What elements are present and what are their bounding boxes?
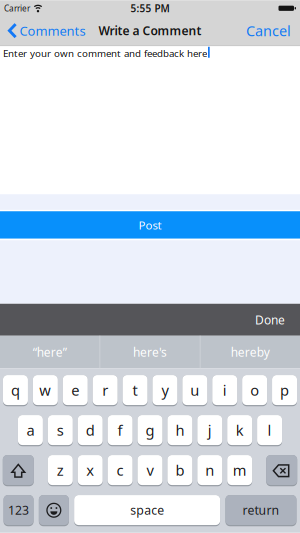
staticText: b — [175, 460, 184, 480]
button[interactable]: p — [272, 375, 297, 406]
staticText: k — [236, 420, 244, 440]
staticText: c — [117, 460, 124, 480]
button[interactable]: s — [48, 415, 73, 446]
staticText: s — [57, 420, 64, 440]
staticText: Comments — [19, 22, 85, 39]
staticText: p — [280, 380, 289, 400]
staticText: t — [132, 380, 137, 400]
staticText: Cancel — [246, 21, 291, 40]
button[interactable]: m — [227, 455, 252, 486]
staticText: l — [268, 420, 272, 440]
button[interactable]: Delete — [266, 455, 297, 486]
staticText: z — [57, 460, 64, 480]
button[interactable]: return — [225, 495, 296, 526]
button[interactable]: Shift — [3, 455, 34, 486]
button[interactable]: j — [197, 415, 222, 446]
button[interactable]: t — [122, 375, 147, 406]
button[interactable]: r — [93, 375, 118, 406]
button[interactable]: v — [137, 455, 162, 486]
button[interactable]: a — [18, 415, 43, 446]
staticText: g — [145, 420, 154, 440]
staticText: d — [86, 420, 95, 440]
button[interactable]: g — [137, 415, 162, 446]
staticText: v — [146, 460, 153, 480]
staticText: n — [205, 460, 214, 480]
button[interactable]: Post — [0, 211, 300, 239]
button[interactable]: b — [167, 455, 192, 486]
button[interactable]: x — [78, 455, 103, 486]
button[interactable]: e — [63, 375, 88, 406]
button[interactable]: Cancel — [246, 21, 300, 40]
button[interactable]: u — [182, 375, 207, 406]
button[interactable]: n — [197, 455, 222, 486]
button[interactable]: hereby — [201, 336, 300, 368]
button[interactable]: h — [167, 415, 192, 446]
staticText: Post — [138, 217, 161, 233]
staticText: u — [190, 380, 199, 400]
button[interactable]: c — [108, 455, 133, 486]
staticText: space — [130, 502, 164, 518]
button[interactable]: space — [74, 495, 220, 526]
button[interactable]: “here” — [0, 336, 99, 368]
staticText: y — [161, 380, 168, 400]
button[interactable]: o — [242, 375, 267, 406]
staticText: q — [11, 380, 20, 400]
staticText: 123 — [8, 502, 29, 518]
staticText: “here” — [33, 344, 67, 360]
staticText: r — [102, 380, 108, 400]
staticText: 5:55 PM — [130, 2, 169, 15]
staticText: a — [26, 420, 34, 440]
button[interactable]: k — [227, 415, 252, 446]
staticText: o — [250, 380, 259, 400]
button[interactable]: f — [108, 415, 133, 446]
button[interactable]: z — [48, 455, 73, 486]
staticText: m — [233, 460, 247, 480]
button[interactable]: q — [3, 375, 28, 406]
button[interactable]: 123 — [4, 495, 34, 526]
staticText: j — [208, 420, 212, 440]
staticText: e — [71, 380, 79, 400]
button[interactable]: l — [257, 415, 282, 446]
staticText: w — [39, 380, 51, 400]
staticText: Write a Comment — [98, 23, 201, 39]
staticText: hereby — [231, 344, 270, 360]
staticText: x — [86, 460, 94, 480]
button[interactable]: Done — [255, 312, 300, 328]
button[interactable]: here's — [100, 336, 200, 368]
button[interactable]: w — [33, 375, 58, 406]
staticText: Done — [255, 312, 285, 328]
staticText: Enter your own comment and feedback here — [3, 47, 207, 60]
staticText: return — [242, 502, 279, 518]
staticText: Carrier — [4, 3, 30, 14]
staticText: h — [175, 420, 184, 440]
staticText: i — [223, 380, 227, 400]
staticText: here's — [133, 344, 167, 360]
button[interactable]: Back to Comments — [0, 22, 85, 39]
button[interactable]: d — [78, 415, 103, 446]
staticText: f — [118, 420, 123, 440]
button[interactable]: Emoji — [39, 495, 69, 526]
button[interactable]: i — [212, 375, 237, 406]
button[interactable]: y — [152, 375, 177, 406]
